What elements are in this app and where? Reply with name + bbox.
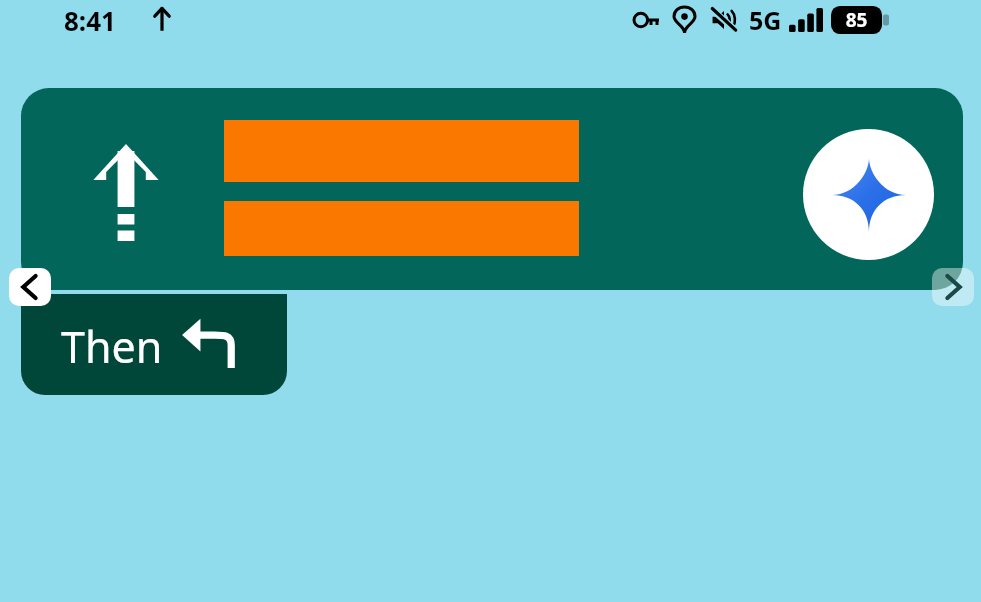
button[interactable]: Ask Gemini [803,129,934,260]
staticText: 8:41 [64,3,116,38]
button[interactable]: Ask Gemini [21,88,963,290]
staticText: 85 [831,7,882,33]
staticText: Then [61,317,163,376]
staticText: 5G [749,3,782,37]
button[interactable]: Then [21,294,287,395]
button[interactable]: Next step [932,268,974,306]
button[interactable]: Previous step [9,268,51,306]
